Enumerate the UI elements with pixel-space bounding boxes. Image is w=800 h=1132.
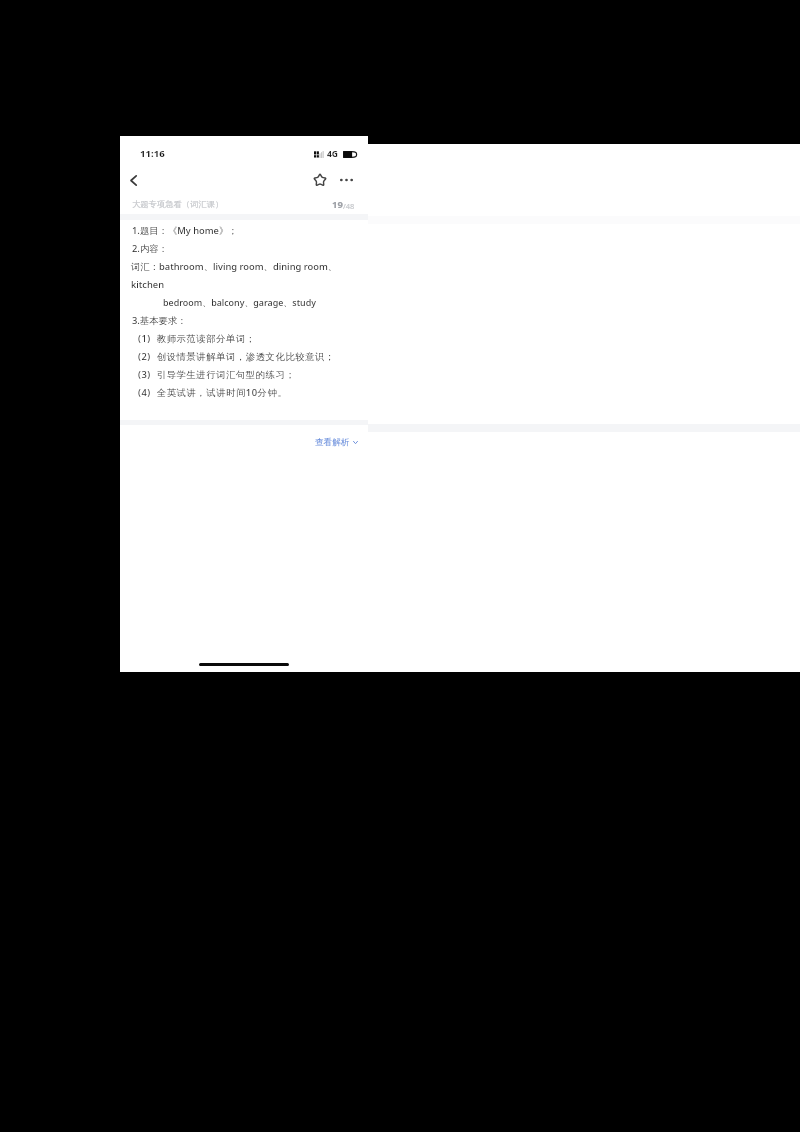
staticText: bedroom、balcony、garage、study bbox=[163, 296, 316, 308]
staticText: 大题专项急看（词汇课） bbox=[132, 199, 224, 209]
button[interactable]: Favorite bbox=[309, 169, 331, 191]
staticText: 2.内容： bbox=[132, 242, 168, 255]
staticText: 4G bbox=[327, 148, 339, 160]
staticText: kitchen bbox=[131, 278, 164, 291]
staticText: (4) 全英试讲，试讲时间10分钟。 bbox=[138, 386, 288, 399]
staticText: 1.题目：《My home》； bbox=[132, 224, 238, 237]
staticText: 词汇：bathroom、living room、dining room、 bbox=[131, 260, 338, 273]
button[interactable]: 查看解析 bbox=[311, 433, 362, 452]
staticText: 19 bbox=[332, 198, 343, 211]
staticText: 查看解析 bbox=[315, 437, 350, 448]
staticText: (2) 创设情景讲解单词，渗透文化比较意识； bbox=[138, 350, 335, 363]
button[interactable]: More options bbox=[335, 169, 357, 191]
staticText: (1) 教师示范读部分单词； bbox=[138, 332, 256, 345]
staticText: 3.基本要求： bbox=[132, 314, 187, 327]
staticText: (3) 引导学生进行词汇句型的练习； bbox=[138, 368, 296, 381]
staticText: 11:16 bbox=[140, 147, 165, 160]
button[interactable]: Back bbox=[121, 168, 145, 192]
staticText: /48 bbox=[343, 201, 355, 211]
